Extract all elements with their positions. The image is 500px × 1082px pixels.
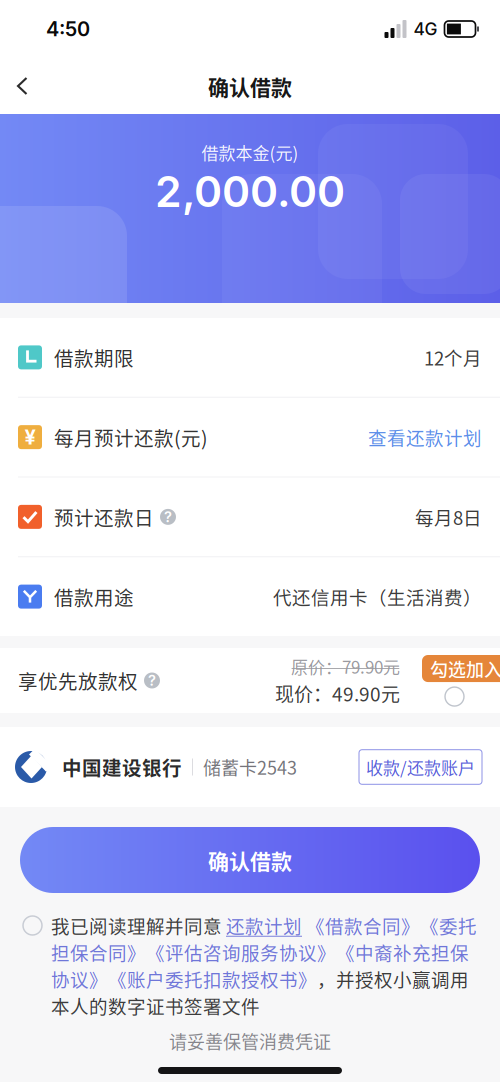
staticText: 4:50	[46, 17, 90, 41]
staticText: ¥	[24, 425, 35, 449]
staticText: 借款本金(元)	[201, 140, 298, 165]
staticText: 2,000.00	[155, 166, 345, 217]
staticText: 代还信用卡（生活消费）	[273, 583, 482, 610]
staticText: 4G	[413, 18, 437, 39]
staticText: 中国建设银行	[62, 753, 182, 781]
button[interactable]: 收款/还款账户	[359, 750, 482, 784]
staticText: 储蓄卡2543	[203, 754, 297, 780]
staticText: 12个月	[424, 344, 482, 371]
staticText: 勾选加入	[430, 655, 500, 682]
staticText: 享优先放款权	[18, 666, 138, 695]
staticText: 查看还款计划	[368, 424, 482, 450]
staticText: 借款期限	[54, 343, 134, 371]
staticText: 借款用途	[54, 582, 134, 611]
staticText: ?	[164, 508, 172, 526]
staticText: 确认借款	[208, 845, 292, 875]
staticText: 预计还款日	[54, 503, 154, 531]
staticText: 现价：49.90元	[275, 680, 400, 707]
staticText: 每月预计还款(元)	[54, 423, 208, 451]
staticText: 请妥善保管消费凭证	[169, 1028, 331, 1054]
staticText: 我已阅读理解并同意 还款计划 《借款合同》《委托担保合同》《评估咨询服务协议》《…	[51, 912, 477, 1019]
staticText: 原价：79.90元	[291, 654, 400, 678]
button[interactable]: 同意协议	[23, 912, 51, 935]
staticText: 收款/还款账户	[366, 755, 475, 779]
button[interactable]: 勾选加入	[422, 648, 500, 706]
button[interactable]: 确认借款	[0, 807, 500, 893]
staticText: 确认借款	[208, 71, 292, 101]
staticText: ?	[148, 672, 156, 689]
staticText: 每月8日	[415, 503, 482, 530]
button[interactable]: 返回	[0, 63, 48, 109]
